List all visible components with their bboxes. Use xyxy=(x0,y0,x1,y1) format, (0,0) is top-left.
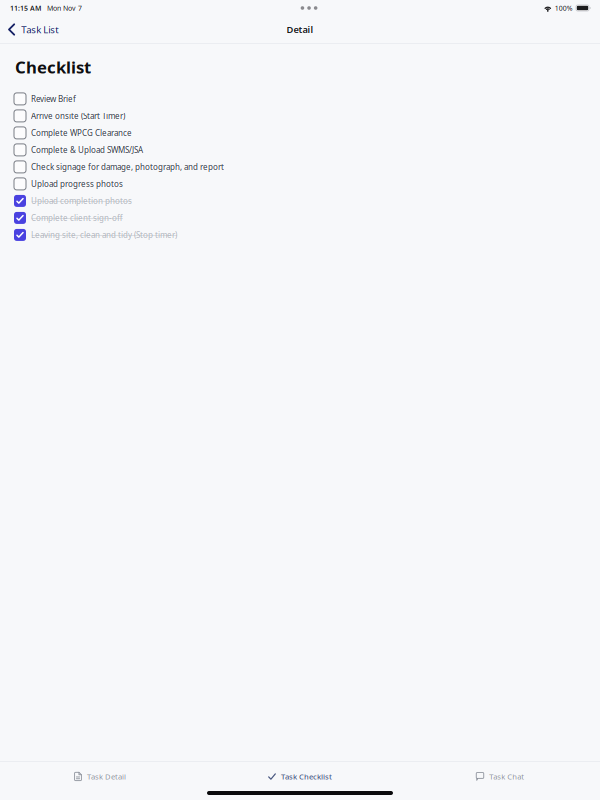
staticText: Upload completion photos xyxy=(31,195,132,206)
staticText: Detail xyxy=(286,23,313,36)
button[interactable]: Task Checklist xyxy=(200,762,400,791)
button[interactable]: Task Chat xyxy=(400,762,600,791)
staticText: Complete & Upload SWMS/JSA xyxy=(31,144,143,155)
staticText: Complete WPCG Clearance xyxy=(31,127,132,138)
button[interactable]: Task List xyxy=(0,19,64,40)
staticText: Leaving site, clean and tidy (Stop timer… xyxy=(31,229,177,240)
staticText: Upload progress photos xyxy=(31,178,123,189)
button[interactable]: Check signage for damage, photograph, an… xyxy=(0,158,600,175)
staticText: Task Detail xyxy=(87,771,126,782)
staticText: Task List xyxy=(21,23,58,36)
button[interactable]: Review Brief xyxy=(0,90,600,107)
button[interactable]: Upload progress photos xyxy=(0,175,600,192)
button[interactable]: Complete WPCG Clearance xyxy=(0,124,600,141)
staticText: 11:15 AM xyxy=(10,3,41,13)
staticText: Review Brief xyxy=(31,93,76,104)
staticText: Task Chat xyxy=(489,771,524,782)
button[interactable]: Task Detail xyxy=(0,762,200,791)
button[interactable]: Complete client sign-off xyxy=(0,209,600,226)
button[interactable]: Arrive onsite (Start Timer) xyxy=(0,107,600,124)
staticText: Mon Nov 7 xyxy=(47,3,82,13)
staticText: Complete client sign-off xyxy=(31,212,123,223)
staticText: 100% xyxy=(555,3,573,13)
staticText: Checklist xyxy=(15,56,91,78)
button[interactable]: Complete & Upload SWMS/JSA xyxy=(0,141,600,158)
staticText: Task Checklist xyxy=(281,771,332,782)
button[interactable]: Upload completion photos xyxy=(0,192,600,209)
staticText: Arrive onsite (Start Timer) xyxy=(31,110,125,121)
button[interactable]: Leaving site, clean and tidy (Stop timer… xyxy=(0,226,600,243)
staticText: Check signage for damage, photograph, an… xyxy=(31,161,224,172)
